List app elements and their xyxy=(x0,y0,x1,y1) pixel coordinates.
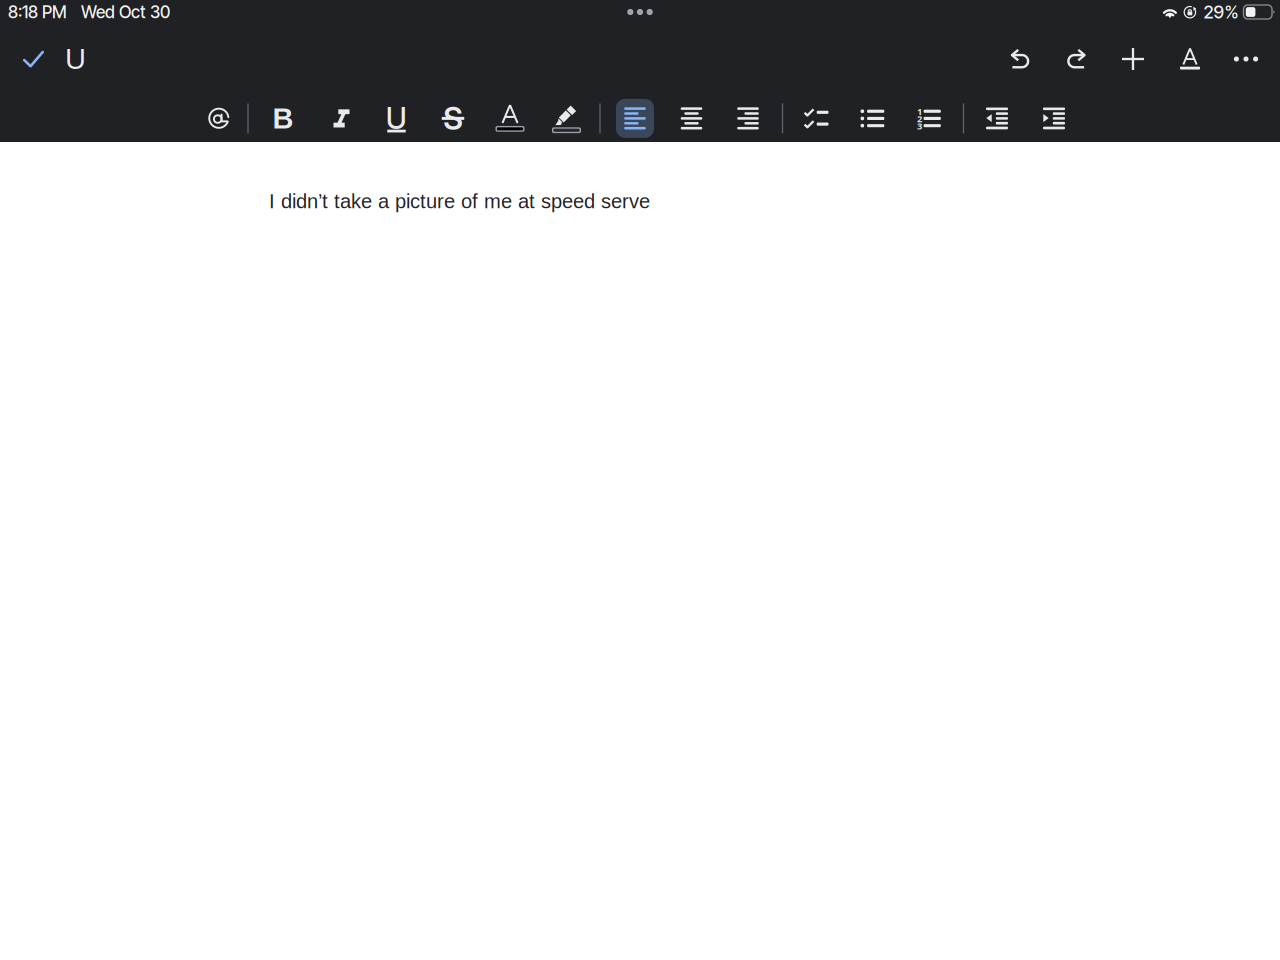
staticText: 8:18 PM xyxy=(8,2,67,22)
staticText: S xyxy=(443,99,463,137)
staticText: 2 xyxy=(917,112,922,125)
button[interactable]: Bulleted list xyxy=(853,98,891,138)
button[interactable]: Done xyxy=(11,37,55,81)
button[interactable]: Strikethrough xyxy=(434,98,472,138)
button[interactable]: Bold xyxy=(264,98,302,138)
staticText: 1 xyxy=(917,105,922,118)
button[interactable]: Align right xyxy=(729,98,767,138)
button[interactable]: Increase indent xyxy=(1035,98,1073,138)
button[interactable]: Redo xyxy=(1055,37,1097,81)
button[interactable]: Insert xyxy=(1112,37,1154,81)
button[interactable]: Decrease indent xyxy=(978,98,1016,138)
button[interactable]: Text formatting xyxy=(1169,37,1211,81)
staticText: Wed Oct 30 xyxy=(81,2,170,22)
button[interactable]: Numbered list xyxy=(910,98,948,138)
button[interactable]: Undo xyxy=(999,37,1041,81)
button[interactable]: Align center xyxy=(672,98,710,138)
staticText: U xyxy=(385,100,407,136)
staticText: U xyxy=(65,43,86,75)
button[interactable]: Highlight color xyxy=(546,98,586,138)
button[interactable]: More options xyxy=(1225,37,1267,81)
button[interactable]: Underline xyxy=(377,98,415,138)
staticText: 29% xyxy=(1203,1,1238,23)
button[interactable]: Checklist xyxy=(797,98,835,138)
button[interactable]: Text color xyxy=(490,98,530,138)
button[interactable]: Italic xyxy=(322,98,360,138)
button[interactable]: Align left xyxy=(616,99,654,138)
button[interactable]: Mention xyxy=(200,98,238,138)
staticText: 3 xyxy=(917,120,922,132)
button[interactable]: U xyxy=(58,37,92,81)
staticText: I didn’t take a picture of me at speed s… xyxy=(269,190,650,212)
staticText: B xyxy=(272,102,293,135)
